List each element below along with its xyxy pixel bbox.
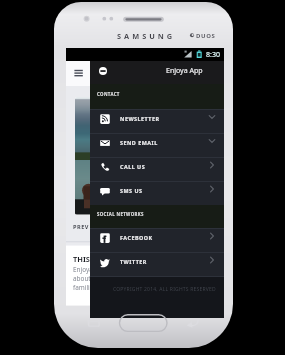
button[interactable]: NEWSLETTER	[90, 110, 224, 133]
staticText: CONTACT	[97, 91, 120, 97]
staticText: SMS US	[120, 187, 143, 194]
button[interactable]: Close menu	[99, 67, 107, 75]
staticText: SOCIAL NETWORKS	[97, 211, 144, 217]
staticText: Enjoya App	[166, 66, 203, 76]
button[interactable]: FACEBOOK	[90, 229, 224, 252]
staticText: 8:30	[206, 50, 220, 60]
button[interactable]: CALL US	[90, 158, 224, 181]
button[interactable]: TWITTER	[90, 253, 224, 276]
staticText: SAMSUNG	[117, 31, 176, 41]
button[interactable]	[66, 61, 224, 86]
staticText: DUOS	[196, 32, 216, 40]
staticText: THIS	[73, 254, 90, 264]
button[interactable]	[75, 97, 195, 215]
staticText: about	[73, 274, 91, 283]
button[interactable]: SMS US	[90, 182, 224, 205]
staticText: familie	[73, 283, 94, 292]
staticText: COPYRIGHT 2014, ALL RIGHTS RESERVED	[113, 286, 216, 293]
staticText: SEND EMAIL	[120, 139, 158, 146]
button[interactable]: SEND EMAIL	[90, 134, 224, 157]
staticText: TWITTER	[120, 258, 147, 265]
staticText: CALL US	[120, 163, 146, 170]
staticText: Enjoya	[73, 265, 93, 274]
staticText: NEWSLETTER	[120, 115, 160, 122]
staticText: FACEBOOK	[120, 234, 153, 241]
staticText: PREV	[73, 223, 89, 231]
